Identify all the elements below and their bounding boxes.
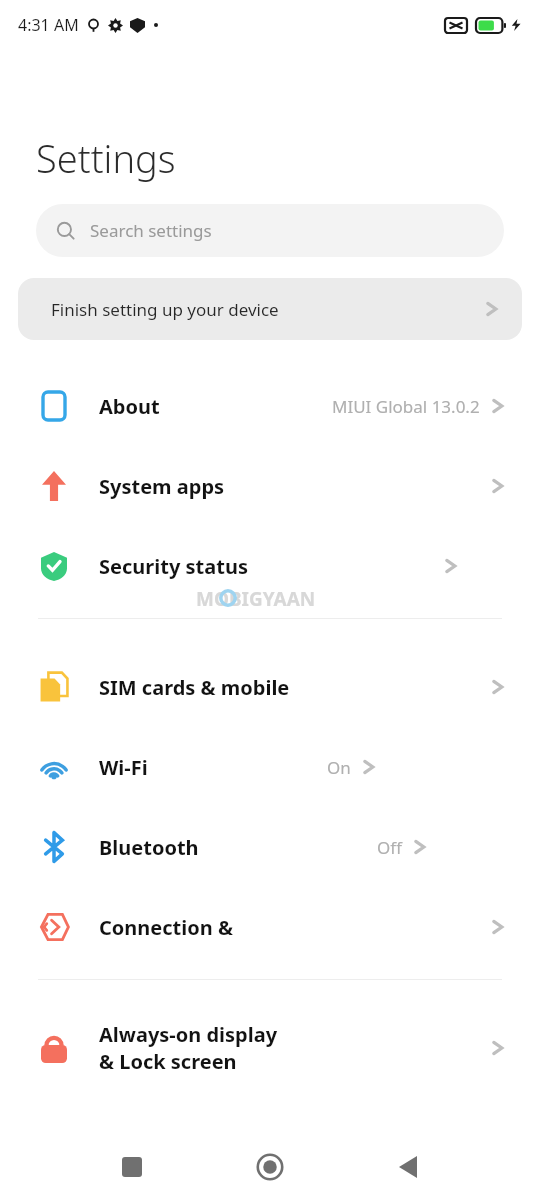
staticText: MIUI Global 13.0.2 [332,395,480,418]
staticText: Always-on display & Lock screen [99,1021,295,1075]
button[interactable]: Home [248,1145,292,1189]
staticText: Wi-Fi [99,754,148,781]
staticText: Security status [99,553,248,580]
staticText: System apps updater [99,473,295,500]
staticText: On [327,756,351,779]
button[interactable]: Finish setting up your device [18,278,522,340]
staticText: About phone [99,393,215,420]
button[interactable]: System apps updater [0,446,540,526]
staticText: Bluetooth [99,834,199,861]
button[interactable]: Always-on display & Lock screen [0,1008,540,1088]
button[interactable]: Back [386,1145,430,1189]
staticText: MOBIGYAAN [196,586,316,612]
button[interactable]: About phone [0,366,540,446]
button[interactable]: Security status [0,526,540,606]
button[interactable]: SIM cards & mobile networks [0,647,540,727]
staticText: 4:31 AM [18,14,79,36]
button[interactable]: Recent apps [110,1145,154,1189]
button[interactable]: Connection & sharing [0,887,540,967]
staticText: SIM cards & mobile networks [99,674,295,701]
button[interactable]: Bluetooth [0,807,540,887]
button[interactable]: Wi-Fi [0,727,540,807]
staticText: Connection & sharing [99,914,295,941]
staticText: Finish setting up your device [51,298,279,321]
staticText: Off [377,836,402,859]
button[interactable]: Search settings [36,204,504,257]
staticText: Search settings [90,219,212,242]
staticText: Settings [36,132,176,184]
